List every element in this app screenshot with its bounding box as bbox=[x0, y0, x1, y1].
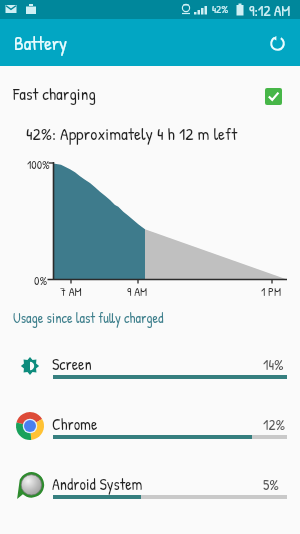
button[interactable]: Chrome bbox=[0, 397, 300, 455]
staticText: 7 AM bbox=[60, 283, 82, 299]
staticText: 9 AM bbox=[127, 283, 148, 299]
staticText: 0% bbox=[34, 272, 48, 288]
staticText: Android System bbox=[52, 473, 143, 495]
button[interactable]: Refresh bbox=[262, 28, 292, 58]
staticText: Usage since last fully charged bbox=[13, 308, 164, 327]
staticText: 42% bbox=[212, 2, 229, 17]
staticText: Chrome bbox=[52, 413, 98, 435]
staticText: 100% bbox=[27, 156, 50, 172]
staticText: 14% bbox=[263, 354, 284, 374]
staticText: 42%: Approximately 4 h 12 m left bbox=[26, 122, 238, 146]
staticText: 12% bbox=[263, 414, 286, 434]
staticText: 1 PM bbox=[261, 283, 282, 299]
button[interactable]: Screen bbox=[0, 337, 300, 395]
button[interactable]: Android System bbox=[0, 457, 300, 515]
staticText: 5% bbox=[263, 474, 279, 494]
staticText: Screen bbox=[52, 353, 92, 375]
button[interactable]: Fast charging bbox=[0, 66, 300, 118]
staticText: Battery bbox=[14, 30, 68, 56]
staticText: Fast charging bbox=[13, 82, 96, 105]
staticText: 9:12 AM bbox=[249, 0, 291, 19]
